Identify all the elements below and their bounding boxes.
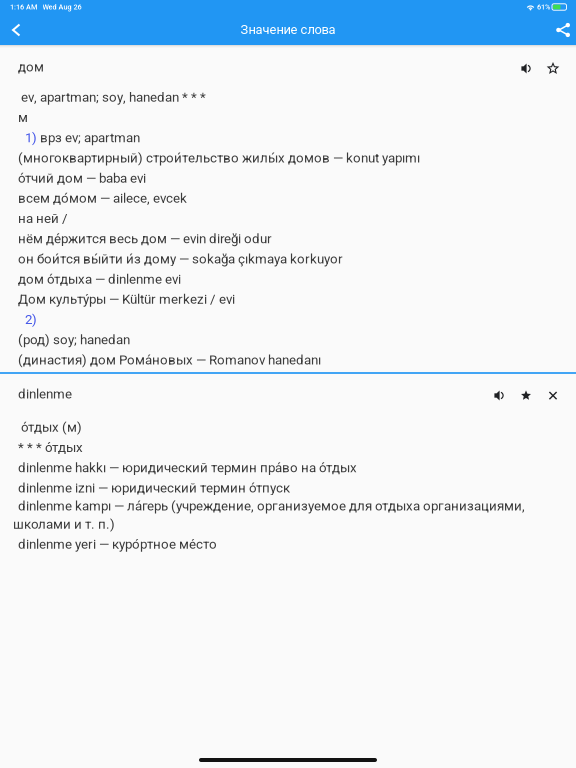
button[interactable]: Pronounce: [487, 383, 511, 405]
staticText: Wed Aug 26: [42, 3, 81, 11]
staticText: dinlenme izni — юридический термин о́тпу…: [18, 480, 290, 496]
staticText: он бои́тся вы́йти и́з дому — sokağa çıkm…: [18, 251, 343, 267]
staticText: Значение слова: [240, 22, 335, 37]
button[interactable]: Back: [0, 14, 32, 45]
staticText: * * * о́тдых: [18, 440, 83, 455]
staticText: (род) soy; hanedan: [18, 332, 130, 347]
staticText: dinlenme yeri — куро́ртное ме́сто: [18, 536, 217, 552]
staticText: dinlenme kampı — ла́герь (учреждение, ор…: [18, 498, 525, 514]
staticText: на ней /: [18, 211, 68, 226]
staticText: 1): [25, 130, 37, 145]
staticText: школами и т. п.): [13, 516, 115, 532]
staticText: ev, apartman; soy, hanedan * * *: [18, 89, 206, 105]
button[interactable]: Share: [542, 14, 574, 45]
staticText: 1:16 AM: [10, 3, 37, 11]
button[interactable]: Add to favorites: [514, 383, 538, 405]
staticText: dinlenme: [18, 386, 72, 402]
staticText: врз ev; apartman: [37, 130, 140, 145]
staticText: м: [18, 110, 28, 125]
button[interactable]: Add to favorites: [541, 56, 565, 78]
staticText: (династия) дом Рома́новых — Romanov hane…: [18, 352, 321, 368]
button[interactable]: Close: [541, 383, 565, 405]
staticText: (многоквартирный) строи́тельство жилы́х …: [18, 150, 420, 166]
staticText: дом о́тдыха — dinlenme evi: [18, 271, 181, 287]
staticText: 2): [25, 312, 37, 327]
staticText: всем до́мом — ailece, evcek: [18, 190, 187, 206]
staticText: 61%: [537, 3, 550, 11]
staticText: о́тдых (м): [18, 419, 82, 435]
staticText: о́тчий дом — baba evi: [18, 170, 146, 186]
staticText: дом: [18, 59, 44, 75]
button[interactable]: Pronounce: [514, 56, 538, 78]
staticText: нём де́ржится весь дом — evin direği odu…: [18, 231, 272, 246]
staticText: dinlenme hakkı — юридический термин пра́…: [18, 460, 357, 475]
staticText: Дом культу́ры — Kültür merkezi / evi: [18, 291, 235, 307]
